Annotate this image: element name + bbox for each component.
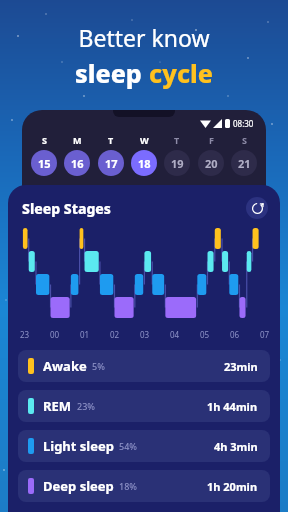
button[interactable]: S [30,134,58,176]
staticText: 1h 44min [207,399,258,414]
staticText: 5% [92,360,105,372]
button[interactable]: S [230,134,258,176]
staticText: 00 [50,329,60,340]
staticText: 03 [140,329,150,340]
button[interactable]: W [130,134,158,176]
button[interactable]: T [97,134,125,176]
staticText: 16 [71,156,84,171]
staticText: 18 [138,156,151,171]
staticText: 08:30 [233,118,254,129]
staticText: T [174,134,180,146]
staticText: 20 [205,156,218,171]
staticText: sleep [75,56,149,90]
staticText: 21 [238,156,251,171]
staticText: 07 [260,329,270,340]
staticText: 23 [20,329,30,340]
staticText: 23min [224,359,258,374]
staticText: 15 [38,156,51,171]
staticText: Light sleep [43,437,114,455]
staticText: M [73,134,82,146]
staticText: 19 [171,156,184,171]
button[interactable]: F [197,134,225,176]
button[interactable]: Deep sleep [18,470,270,502]
staticText: T [108,134,114,146]
button[interactable]: Awake [18,350,270,382]
staticText: Sleep Stages [22,199,111,218]
staticText: W [140,134,149,146]
button[interactable]: M [63,134,91,176]
button[interactable]: T [163,134,191,176]
staticText: 04 [170,329,180,340]
staticText: Awake [43,357,87,375]
staticText: 17 [105,156,118,171]
staticText: 02 [110,329,120,340]
staticText: 05 [200,329,210,340]
staticText: 4h 3min [214,439,258,454]
staticText: 18% [119,480,137,492]
staticText: Better know [78,22,210,53]
staticText: cycle [149,56,213,90]
staticText: S [42,134,47,146]
staticText: REM [43,397,72,415]
staticText: 54% [119,440,137,452]
button[interactable]: Light sleep [18,430,270,462]
staticText: S [242,134,247,146]
button[interactable]: Refresh [246,197,268,219]
staticText: 1h 20min [207,479,258,494]
staticText: Deep sleep [43,477,114,495]
staticText: 23% [77,400,95,412]
staticText: 06 [230,329,240,340]
staticText: F [209,134,214,146]
button[interactable]: REM [18,390,270,422]
staticText: 01 [80,329,90,340]
